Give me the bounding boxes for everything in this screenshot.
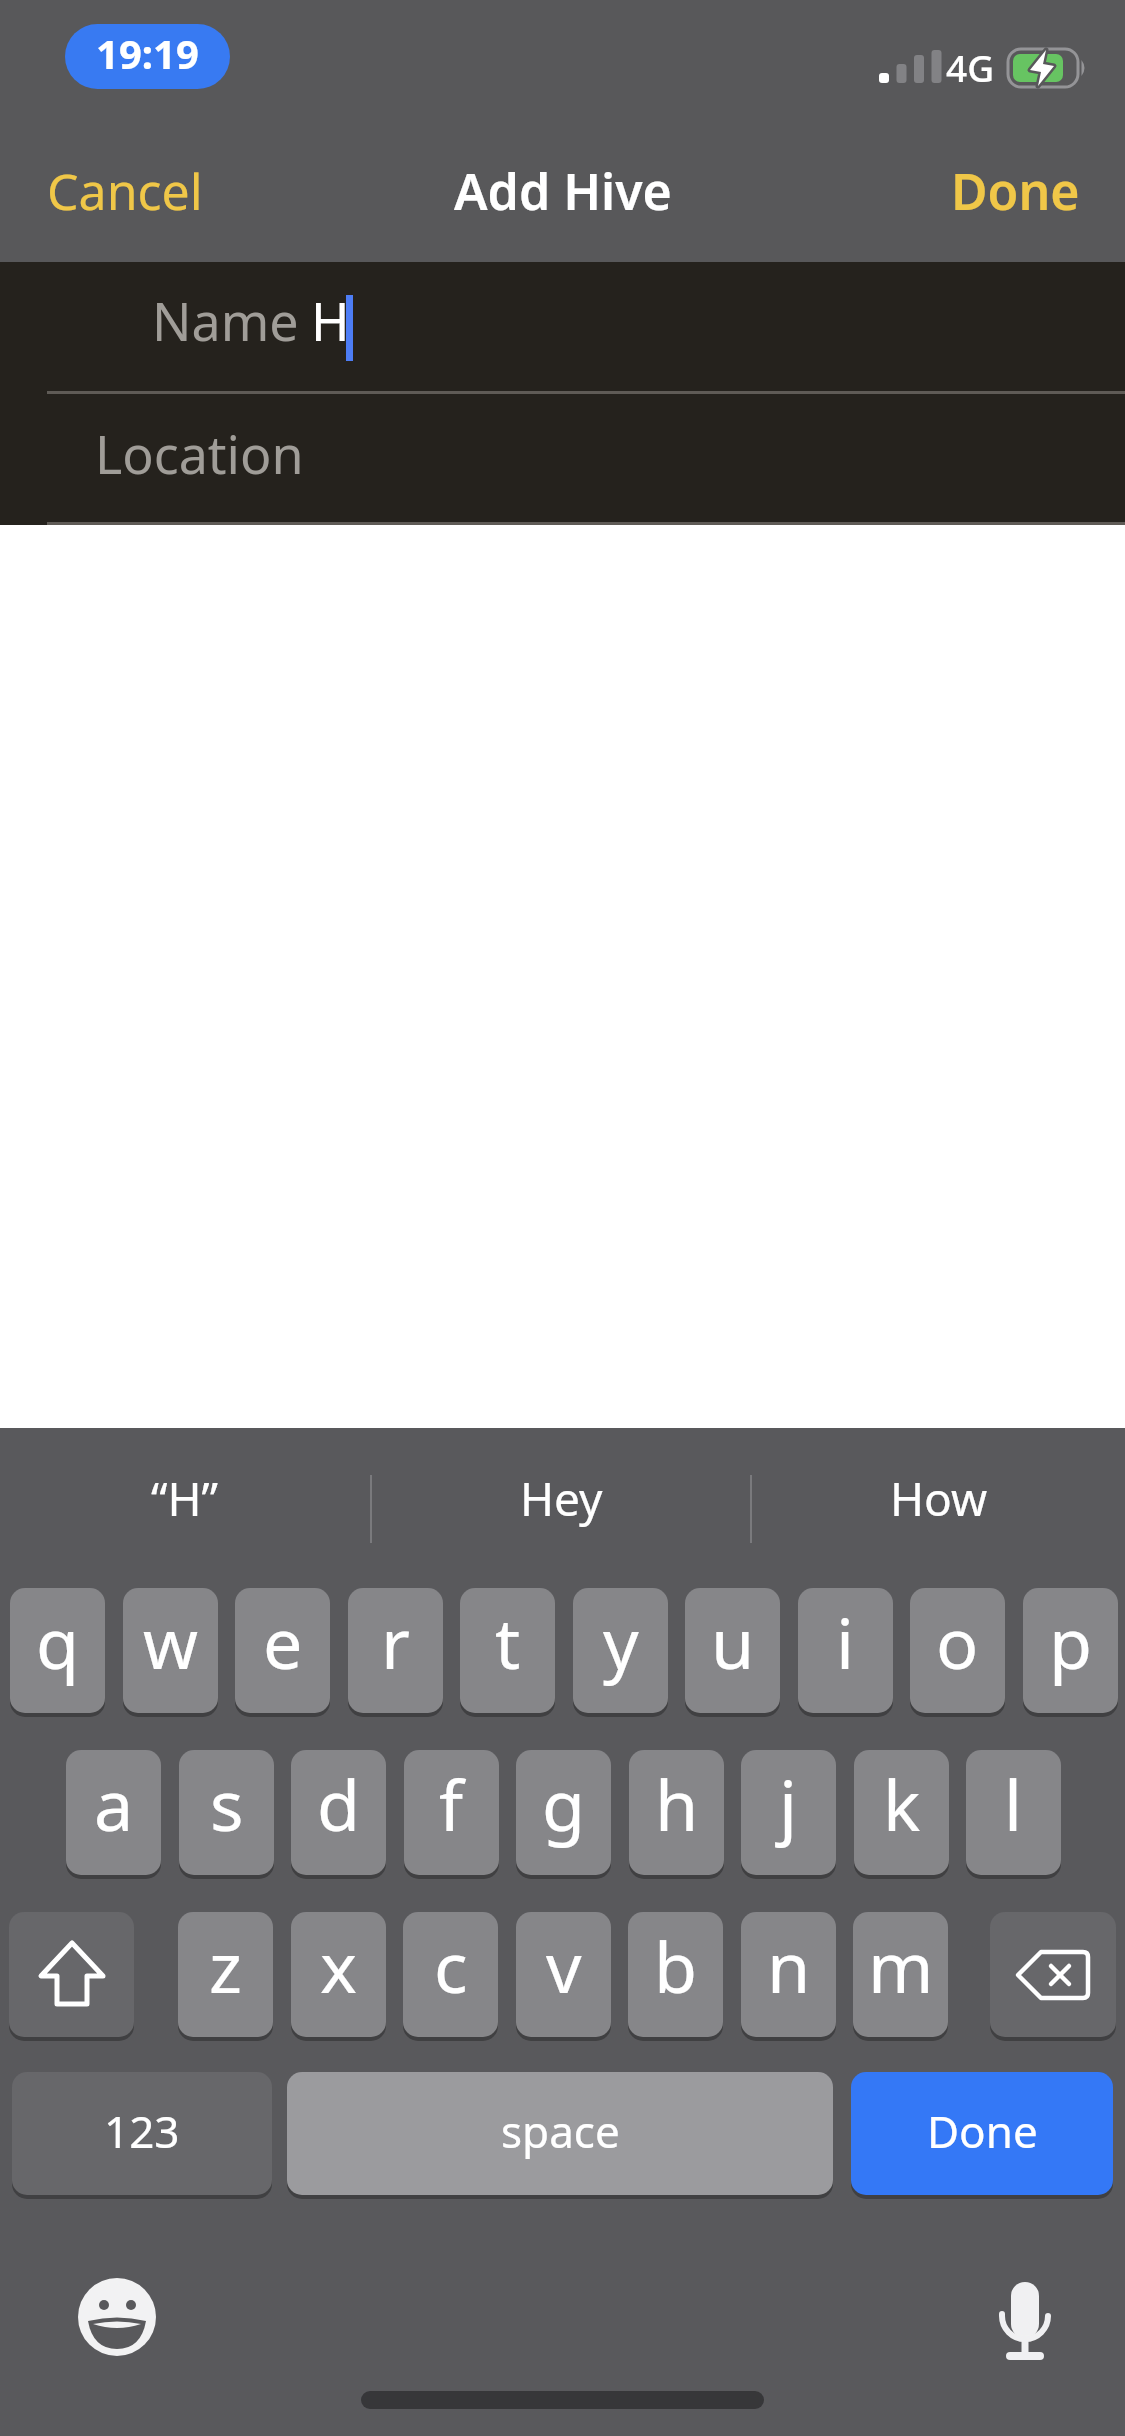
button[interactable]: c [403,1912,498,2037]
button[interactable] [0,394,1125,523]
staticText: h [655,1756,699,1851]
staticText: r [381,1594,410,1689]
button[interactable]: How [752,1463,1125,1533]
button[interactable]: u [685,1588,780,1713]
button[interactable]: g [516,1750,611,1875]
button[interactable]: Cancel [47,157,203,225]
button[interactable]: q [10,1588,105,1713]
staticText: e [263,1594,303,1689]
button[interactable]: i [798,1588,893,1713]
staticText: Location [95,418,304,488]
button[interactable]: “H” [0,1463,370,1533]
button[interactable]: y [573,1588,668,1713]
button[interactable] [74,2274,160,2360]
button[interactable]: h [629,1750,724,1875]
staticText: o [936,1594,979,1689]
staticText: i [836,1594,855,1689]
button[interactable]: z [178,1912,273,2037]
staticText: b [654,1918,698,2013]
staticText: k [883,1756,921,1851]
staticText: x [320,1918,358,2013]
staticText: t [495,1594,521,1689]
staticText: u [711,1594,755,1689]
staticText: H [311,285,350,355]
button[interactable]: Hey [372,1463,750,1533]
staticText: p [1049,1594,1093,1689]
button[interactable]: p [1023,1588,1118,1713]
button[interactable]: t [460,1588,555,1713]
staticText: Done [951,157,1080,225]
button[interactable]: n [741,1912,836,2037]
button[interactable]: j [741,1750,836,1875]
staticText: z [209,1918,242,2013]
button[interactable]: 123 [12,2072,272,2195]
button[interactable]: b [628,1912,723,2037]
staticText: Hey [520,1467,603,1530]
staticText: q [36,1594,80,1689]
staticText: Cancel [47,157,203,225]
button[interactable] [985,2270,1065,2370]
button[interactable]: m [853,1912,948,2037]
button[interactable]: l [966,1750,1061,1875]
staticText: l [1004,1756,1023,1851]
staticText: a [94,1756,134,1851]
staticText: Done [927,2101,1038,2161]
button[interactable]: f [404,1750,499,1875]
staticText: w [143,1594,199,1689]
staticText: j [779,1756,798,1851]
staticText: 19:19 [96,26,199,80]
staticText: n [767,1918,811,2013]
button[interactable]: x [291,1912,386,2037]
button[interactable]: Done [851,2072,1113,2195]
staticText: Add Hive [454,157,672,225]
button[interactable]: d [291,1750,386,1875]
button[interactable]: a [66,1750,161,1875]
button[interactable]: k [854,1750,949,1875]
button[interactable]: o [910,1588,1005,1713]
staticText: 123 [104,2101,180,2161]
button[interactable]: e [235,1588,330,1713]
staticText: y [603,1594,639,1689]
button[interactable]: 19:19 [65,24,230,89]
staticText: How [890,1467,988,1530]
staticText: Name [152,285,299,355]
staticText: c [434,1918,468,2013]
staticText: “H” [151,1467,219,1530]
button[interactable] [990,1912,1116,2037]
staticText: 4G [946,42,995,92]
staticText: s [210,1756,244,1851]
button[interactable]: Done [940,156,1080,226]
staticText: v [546,1918,582,2013]
button[interactable]: v [516,1912,611,2037]
staticText: space [501,2101,620,2161]
staticText: g [542,1756,586,1851]
staticText: d [317,1756,361,1851]
button[interactable] [9,1912,134,2037]
staticText: f [439,1756,464,1851]
button[interactable] [0,262,1125,393]
button[interactable]: r [348,1588,443,1713]
staticText: m [868,1918,934,2013]
button[interactable]: w [123,1588,218,1713]
button[interactable]: space [287,2072,833,2195]
button[interactable]: s [179,1750,274,1875]
